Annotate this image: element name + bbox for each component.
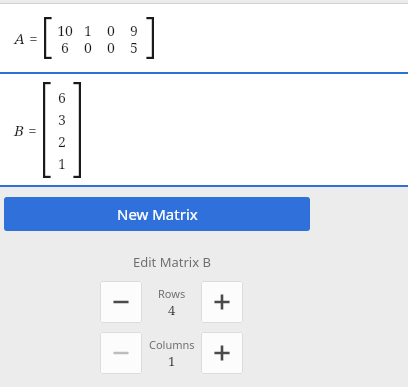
button[interactable]: Increase Rows (201, 281, 243, 323)
staticText: 3 (58, 110, 66, 129)
staticText: Rows (158, 286, 186, 301)
staticText: 0 (107, 38, 115, 55)
staticText: New Matrix (117, 204, 198, 224)
staticText: 4 (168, 301, 176, 319)
button[interactable]: B (0, 74, 408, 185)
staticText: Columns (149, 337, 195, 352)
button[interactable]: A (0, 4, 408, 72)
button[interactable]: Decrease Rows (100, 281, 142, 323)
button[interactable]: New Matrix (4, 197, 310, 231)
button[interactable]: Decrease Columns (100, 332, 142, 374)
staticText: = (28, 120, 37, 140)
staticText: 10 (57, 21, 73, 38)
staticText: 6 (61, 38, 69, 55)
staticText: 1 (58, 154, 66, 173)
staticText: Edit Matrix B (133, 253, 211, 271)
staticText: 5 (130, 38, 138, 55)
button[interactable]: Increase Columns (201, 332, 243, 374)
staticText: 0 (84, 38, 92, 55)
staticText: 0 (107, 21, 115, 38)
staticText: 9 (130, 21, 138, 38)
staticText: B (14, 120, 24, 140)
staticText: 1 (84, 21, 92, 38)
staticText: = (29, 28, 38, 48)
staticText: 1 (168, 352, 176, 370)
staticText: 2 (58, 132, 66, 151)
staticText: A (14, 28, 25, 48)
staticText: 6 (58, 88, 66, 107)
